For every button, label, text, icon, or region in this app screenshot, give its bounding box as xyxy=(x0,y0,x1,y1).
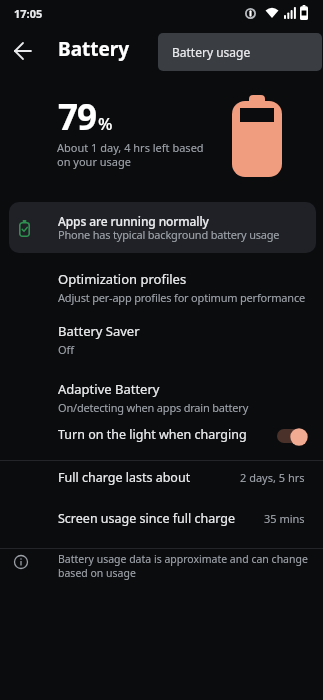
staticText: Screen usage since full charge xyxy=(58,510,236,527)
staticText: 2 days, 5 hrs xyxy=(240,470,305,485)
button[interactable]: Optimization profiles xyxy=(0,262,323,305)
button[interactable] xyxy=(10,40,46,62)
staticText: Battery Saver xyxy=(58,322,140,340)
staticText: Battery usage xyxy=(172,44,251,60)
staticText: 17:05 xyxy=(14,6,43,21)
button[interactable]: Apps are running normally xyxy=(9,202,316,253)
button[interactable]: Screen usage since full charge xyxy=(0,502,323,538)
staticText: 79 xyxy=(58,93,97,141)
button[interactable]: Adaptive Battery xyxy=(0,372,323,415)
staticText: Off xyxy=(58,342,74,357)
staticText: Phone has typical background battery usa… xyxy=(58,227,280,242)
staticText: 35 mins xyxy=(264,511,305,526)
staticText: Battery usage data is approximate and ca… xyxy=(58,552,308,580)
button[interactable]: Turn on the light when charging xyxy=(0,418,323,456)
staticText: Optimization profiles xyxy=(58,270,187,288)
staticText: About 1 day, 4 hrs left based on your us… xyxy=(57,140,204,169)
staticText: Battery xyxy=(58,36,130,62)
button[interactable]: Battery Saver xyxy=(0,314,323,357)
staticText: Apps are running normally xyxy=(58,213,209,229)
staticText: Full charge lasts about xyxy=(58,469,191,486)
button[interactable]: Full charge lasts about xyxy=(0,461,323,497)
staticText: Adjust per-app profiles for optimum perf… xyxy=(58,290,306,305)
staticText: % xyxy=(98,112,113,135)
staticText: On/detecting when apps drain battery xyxy=(58,400,249,415)
staticText: Adaptive Battery xyxy=(58,380,160,398)
staticText: Turn on the light when charging xyxy=(58,426,247,443)
button[interactable]: Battery usage xyxy=(158,33,322,71)
